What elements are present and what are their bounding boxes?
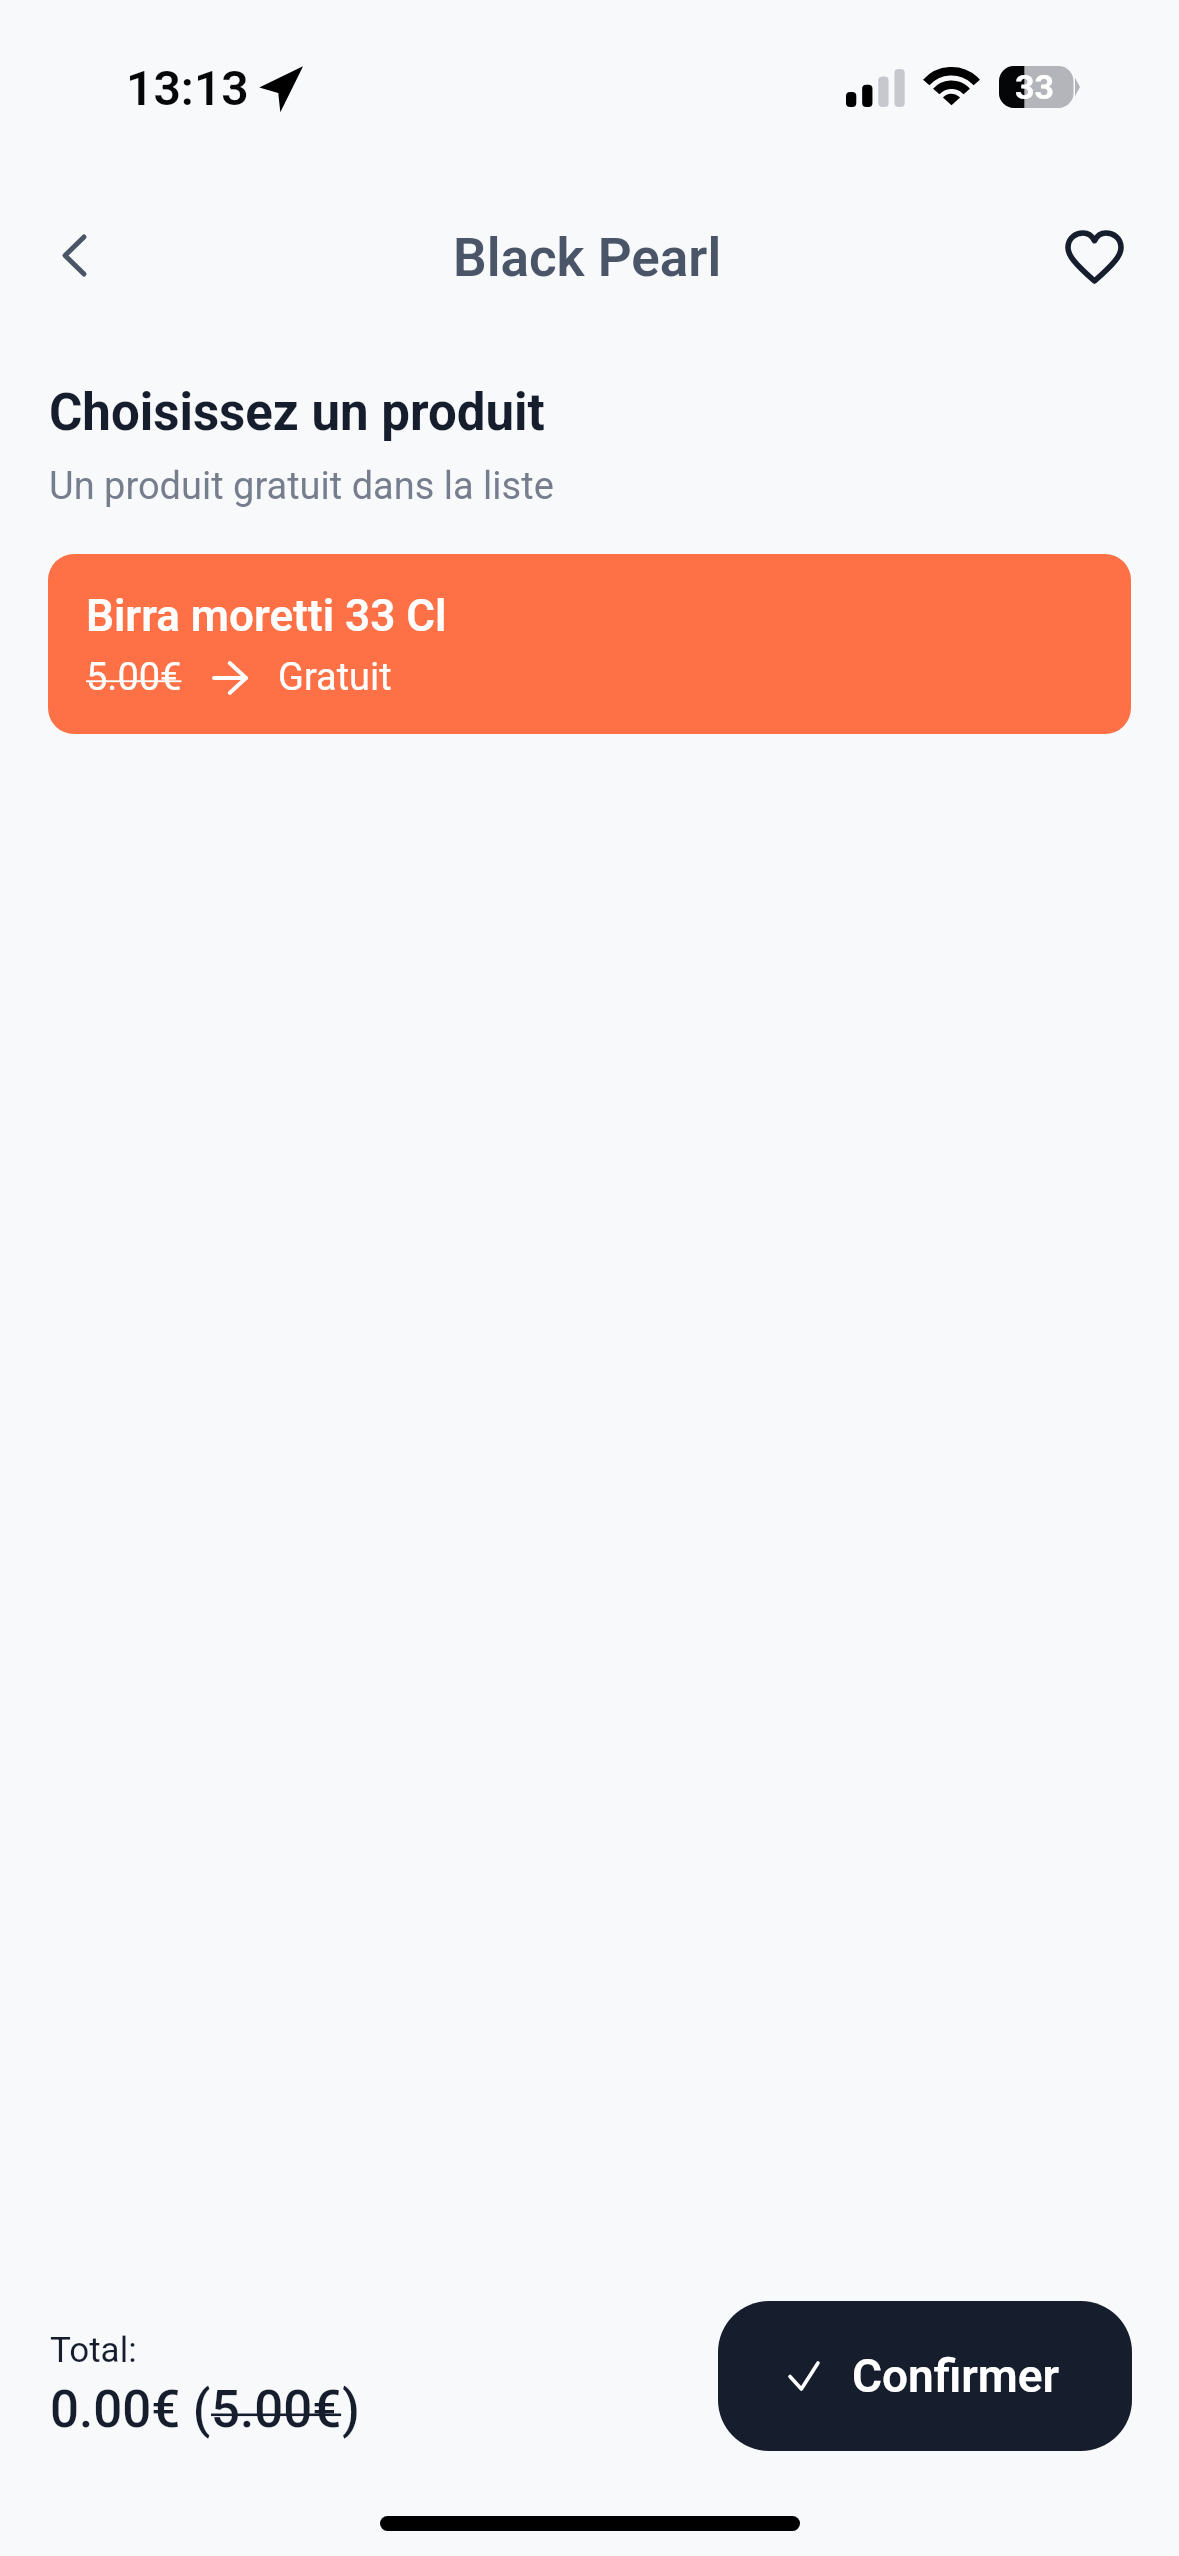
staticText: ) <box>342 2380 360 2440</box>
staticText: Confirmer <box>852 2349 1060 2403</box>
staticText: 5.00€ <box>86 655 182 700</box>
staticText: Black Pearl <box>453 227 722 289</box>
staticText: Gratuit <box>278 655 392 700</box>
staticText: 0.00€ ( <box>50 2380 211 2440</box>
button[interactable]: Birra moretti 33 Cl <box>48 554 1131 734</box>
staticText: 5.00€ <box>211 2380 342 2440</box>
staticText: Choisissez un produit <box>49 383 545 443</box>
button[interactable]: Back <box>24 207 120 303</box>
staticText: Total: <box>50 2330 137 2371</box>
staticText: 13:13 <box>126 60 249 116</box>
staticText: 33 <box>1015 67 1055 107</box>
staticText: Birra moretti 33 Cl <box>86 590 447 642</box>
button[interactable]: Confirmer <box>718 2301 1132 2451</box>
staticText: Un produit gratuit dans la liste <box>49 464 554 509</box>
button[interactable]: Favorite <box>1046 209 1142 305</box>
